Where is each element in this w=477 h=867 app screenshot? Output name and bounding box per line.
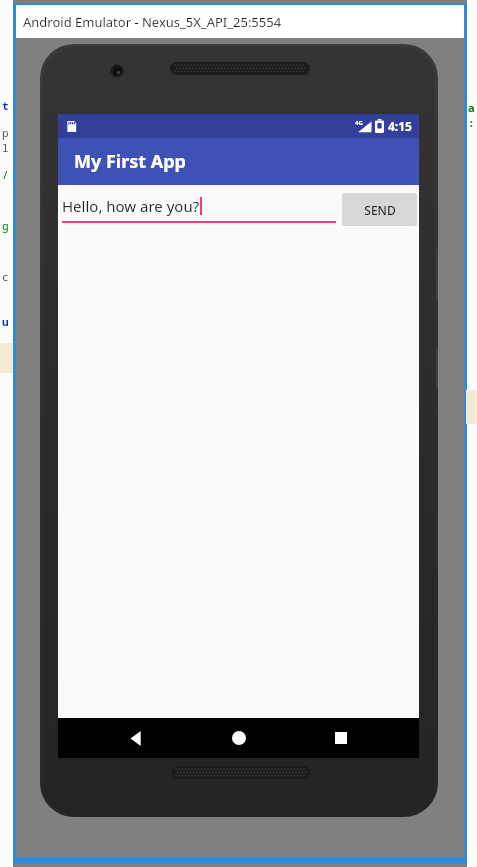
staticText: u [2,314,9,329]
button[interactable]: SEND [342,193,417,226]
button[interactable]: Home [215,718,263,758]
staticText: My First App [74,149,186,174]
staticText: t [2,98,9,113]
staticText: Hello, how are you? [62,196,200,216]
staticText: SEND [364,202,396,218]
staticText: g [2,218,9,233]
staticText: pl [2,125,14,155]
staticText: 4:15 [388,118,412,134]
staticText: a: [468,100,477,130]
staticText: Android Emulator - Nexus_5X_API_25:5554 [23,13,282,31]
staticText: / [2,167,14,182]
button[interactable]: Back [112,718,160,758]
staticText: c [2,269,9,284]
button[interactable]: Hello, how are you? [62,196,336,223]
staticText: 4G [355,119,363,127]
button[interactable]: Recent apps [317,718,365,758]
